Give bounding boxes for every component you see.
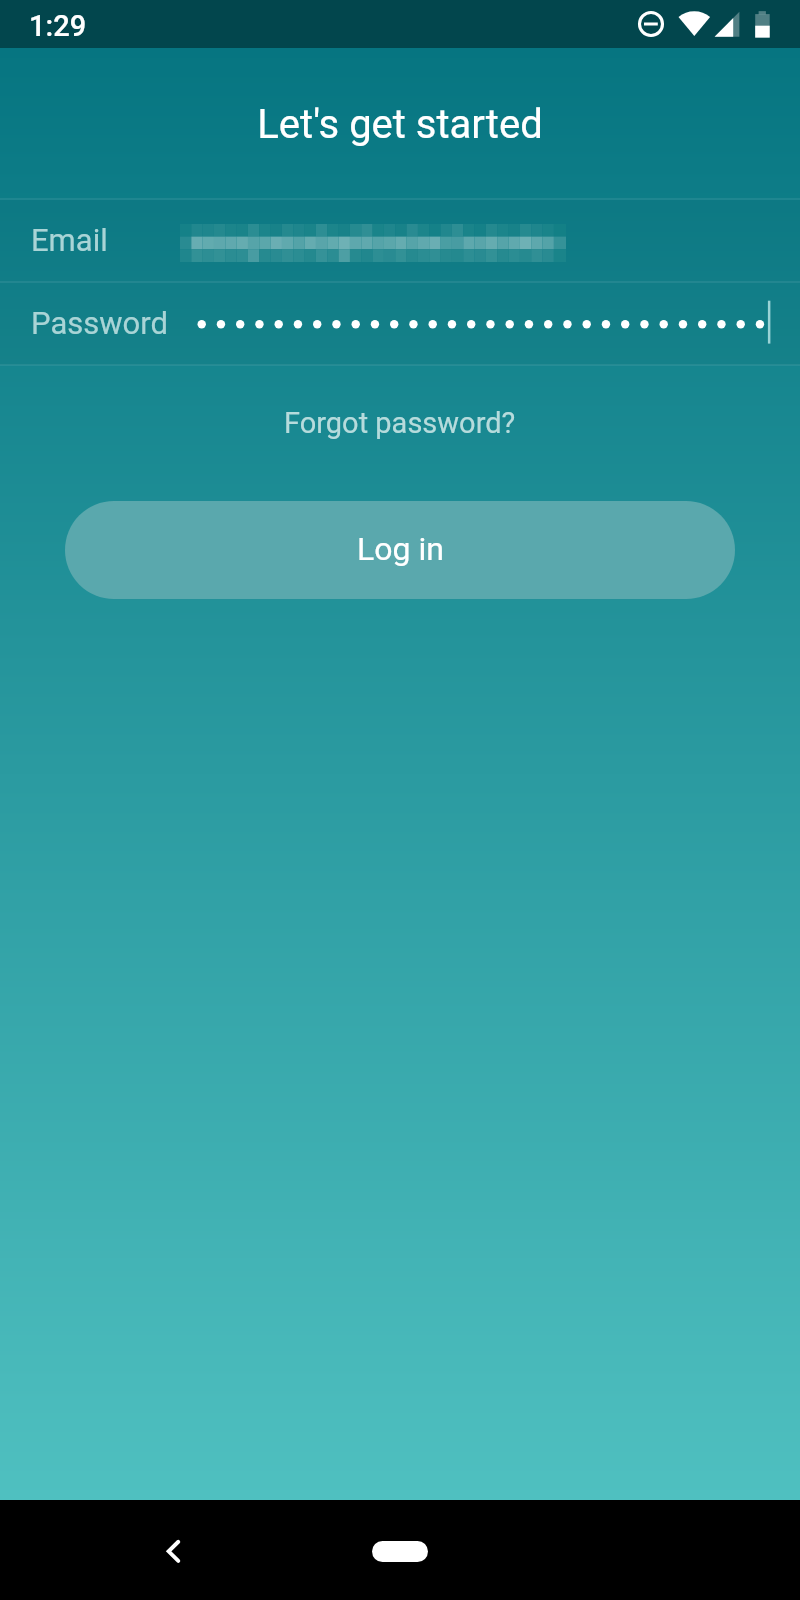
- button[interactable]: Back: [135, 1510, 215, 1590]
- staticText: Password: [31, 305, 168, 341]
- staticText: Forgot password?: [284, 406, 516, 440]
- staticText: Let's get started: [0, 101, 800, 148]
- staticText: 1:29: [29, 9, 87, 43]
- button[interactable]: Home: [372, 1541, 428, 1562]
- button[interactable]: Forgot password?: [268, 398, 532, 448]
- staticText: Email: [31, 222, 108, 258]
- staticText: Log in: [357, 530, 444, 568]
- button[interactable]: Email: [0, 198, 800, 281]
- button[interactable]: Log in: [65, 501, 735, 599]
- button[interactable]: Password: [0, 283, 800, 364]
